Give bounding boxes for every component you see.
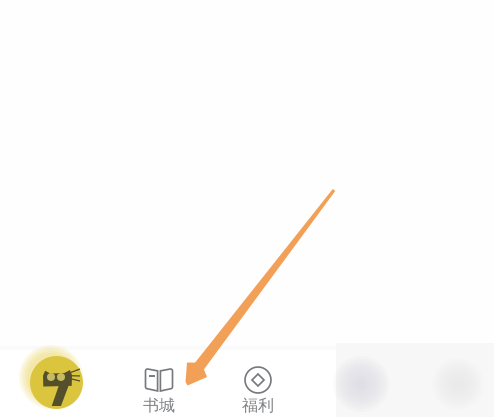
button[interactable]: 书城: [117, 353, 201, 413]
staticText: 书城: [143, 395, 175, 415]
button[interactable]: 福利: [216, 353, 300, 413]
staticText: 福利: [242, 395, 274, 415]
button[interactable]: 七猫助手: [30, 356, 83, 409]
